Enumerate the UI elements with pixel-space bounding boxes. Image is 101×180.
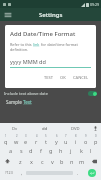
button[interactable]: ?123 xyxy=(0,167,17,178)
button[interactable]: s xyxy=(16,145,26,156)
button[interactable]: Space xyxy=(26,170,73,175)
staticText: Refer to this xyxy=(10,42,33,47)
button[interactable]: Include text above date xyxy=(0,89,101,98)
staticText: k xyxy=(80,147,83,154)
staticText: for date/time format xyxy=(40,42,78,47)
staticText: q xyxy=(4,138,8,145)
staticText: 7 xyxy=(65,134,67,138)
staticText: 8 xyxy=(75,134,77,138)
button[interactable]: Enter xyxy=(82,167,101,178)
staticText: definition. xyxy=(10,47,29,52)
button[interactable]: Open navigation menu xyxy=(3,10,13,20)
staticText: 6 xyxy=(56,134,58,138)
staticText: f xyxy=(40,147,42,154)
staticText: c xyxy=(41,158,44,165)
button[interactable]: x xyxy=(26,156,37,167)
button[interactable]: l xyxy=(86,145,96,156)
button[interactable]: k xyxy=(76,145,86,156)
button[interactable]: Dv xyxy=(0,123,30,134)
button[interactable]: b xyxy=(57,156,67,167)
staticText: m xyxy=(79,158,85,165)
staticText: i xyxy=(75,138,77,145)
staticText: ?123 xyxy=(5,170,13,175)
staticText: DVD xyxy=(71,126,80,132)
button[interactable]: 3 xyxy=(21,134,31,145)
button[interactable]: Backspace xyxy=(87,156,101,167)
staticText: s xyxy=(20,147,23,154)
staticText: z xyxy=(19,158,22,165)
staticText: Settings xyxy=(39,11,63,19)
staticText: u xyxy=(64,138,68,145)
staticText: y xyxy=(55,138,58,145)
staticText: . xyxy=(77,170,79,176)
staticText: w xyxy=(14,138,19,145)
staticText: r xyxy=(35,138,38,145)
staticText: v xyxy=(51,158,54,165)
button[interactable]: link xyxy=(33,42,40,47)
button[interactable]: g xyxy=(46,145,56,156)
button[interactable]: Voice input xyxy=(90,123,101,134)
button[interactable]: f xyxy=(36,145,46,156)
staticText: yyyy MMM dd xyxy=(10,58,46,65)
button[interactable]: DVD xyxy=(60,123,90,134)
staticText: e xyxy=(24,138,28,145)
staticText: g xyxy=(49,147,53,154)
staticText: n xyxy=(70,158,74,165)
button[interactable]: Shift xyxy=(0,156,15,167)
button[interactable]: h xyxy=(56,145,66,156)
staticText: o xyxy=(84,138,88,145)
button[interactable]: v xyxy=(47,156,57,167)
button[interactable]: 2 xyxy=(11,134,21,145)
staticText: 3 xyxy=(25,134,27,138)
button[interactable]: 9 xyxy=(81,134,91,145)
staticText: 09:29 xyxy=(90,2,99,7)
staticText: p xyxy=(94,138,98,145)
button[interactable]: 0 xyxy=(91,134,101,145)
button[interactable]: 5 xyxy=(41,134,51,145)
staticText: Include text above date xyxy=(4,91,88,96)
staticText: a xyxy=(9,147,13,154)
button[interactable]: 8 xyxy=(71,134,81,145)
button[interactable]: CANCEL xyxy=(71,73,91,82)
button[interactable]: a xyxy=(6,145,16,156)
button[interactable]: n xyxy=(67,156,77,167)
button[interactable]: 1 xyxy=(0,134,11,145)
button[interactable]: , xyxy=(17,167,26,178)
staticText: l xyxy=(90,147,92,154)
button[interactable]: TEST xyxy=(42,73,55,82)
button[interactable]: yyyy MMM dd xyxy=(10,58,91,68)
button[interactable]: 7 xyxy=(61,134,71,145)
button[interactable]: 6 xyxy=(51,134,61,145)
staticText: 2 xyxy=(16,134,18,138)
staticText: 5 xyxy=(45,134,47,138)
staticText: 4 xyxy=(36,134,38,138)
staticText: Sample xyxy=(6,99,23,105)
button[interactable]: d xyxy=(26,145,36,156)
button[interactable]: z xyxy=(15,156,26,167)
staticText: 0 xyxy=(95,134,97,138)
staticText: OK xyxy=(60,75,66,80)
staticText: h xyxy=(59,147,63,154)
staticText: x xyxy=(30,158,33,165)
button[interactable]: OK xyxy=(58,73,68,82)
staticText: 9 xyxy=(85,134,87,138)
button[interactable]: 4 xyxy=(31,134,41,145)
staticText: CANCEL xyxy=(73,75,89,80)
staticText: Text xyxy=(23,99,32,105)
staticText: Dv xyxy=(12,126,18,132)
staticText: b xyxy=(60,158,64,165)
staticText: , xyxy=(21,170,23,176)
button[interactable]: m xyxy=(77,156,87,167)
staticText: t xyxy=(45,138,47,145)
staticText: TEST xyxy=(44,75,53,80)
staticText: 1 xyxy=(5,134,7,138)
button[interactable]: c xyxy=(37,156,47,167)
button[interactable]: dd xyxy=(30,123,60,134)
button[interactable]: j xyxy=(66,145,76,156)
button[interactable]: . xyxy=(73,167,82,178)
staticText: dd xyxy=(42,126,48,132)
staticText: j xyxy=(70,147,72,154)
staticText: d xyxy=(29,147,33,154)
staticText: Add Date/Time Format xyxy=(10,30,76,38)
